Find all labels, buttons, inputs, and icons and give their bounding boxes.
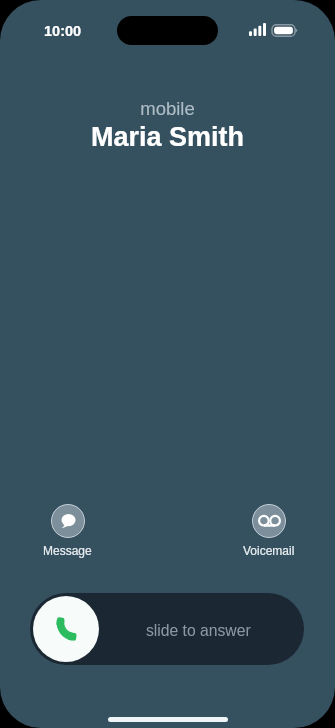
staticText: slide to answer (146, 622, 251, 640)
button[interactable]: Voicemail (229, 504, 308, 557)
staticText: Message (43, 544, 92, 557)
staticText: Voicemail (243, 544, 295, 557)
staticText: mobile (0, 98, 335, 119)
staticText: 10:00 (44, 23, 82, 39)
button[interactable]: Answer call (33, 596, 99, 662)
button[interactable]: Send message (28, 504, 107, 557)
button[interactable]: slide to answer (30, 593, 304, 665)
staticText: Maria Smith (0, 122, 335, 152)
